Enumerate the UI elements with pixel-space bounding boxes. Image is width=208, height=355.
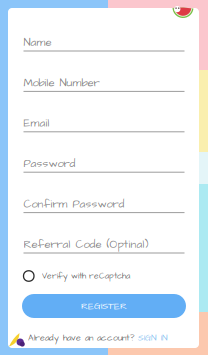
staticText: REGISTER <box>81 299 127 313</box>
staticText: Verify with reCaptcha <box>42 270 130 282</box>
staticText: Referral Code (Optinal) <box>23 237 148 252</box>
button[interactable]: SIGN IN <box>138 332 168 344</box>
staticText: Email <box>23 115 49 131</box>
staticText: Name <box>23 35 51 50</box>
staticText: Already have an account? <box>28 332 134 344</box>
staticText: Confirm Password <box>23 196 124 212</box>
button[interactable]: Verify with reCaptcha <box>23 268 184 284</box>
staticText: SIGN IN <box>138 332 168 344</box>
button[interactable]: REGISTER <box>22 294 186 318</box>
staticText: Mobile Number <box>23 75 99 91</box>
staticText: Password <box>23 156 75 171</box>
